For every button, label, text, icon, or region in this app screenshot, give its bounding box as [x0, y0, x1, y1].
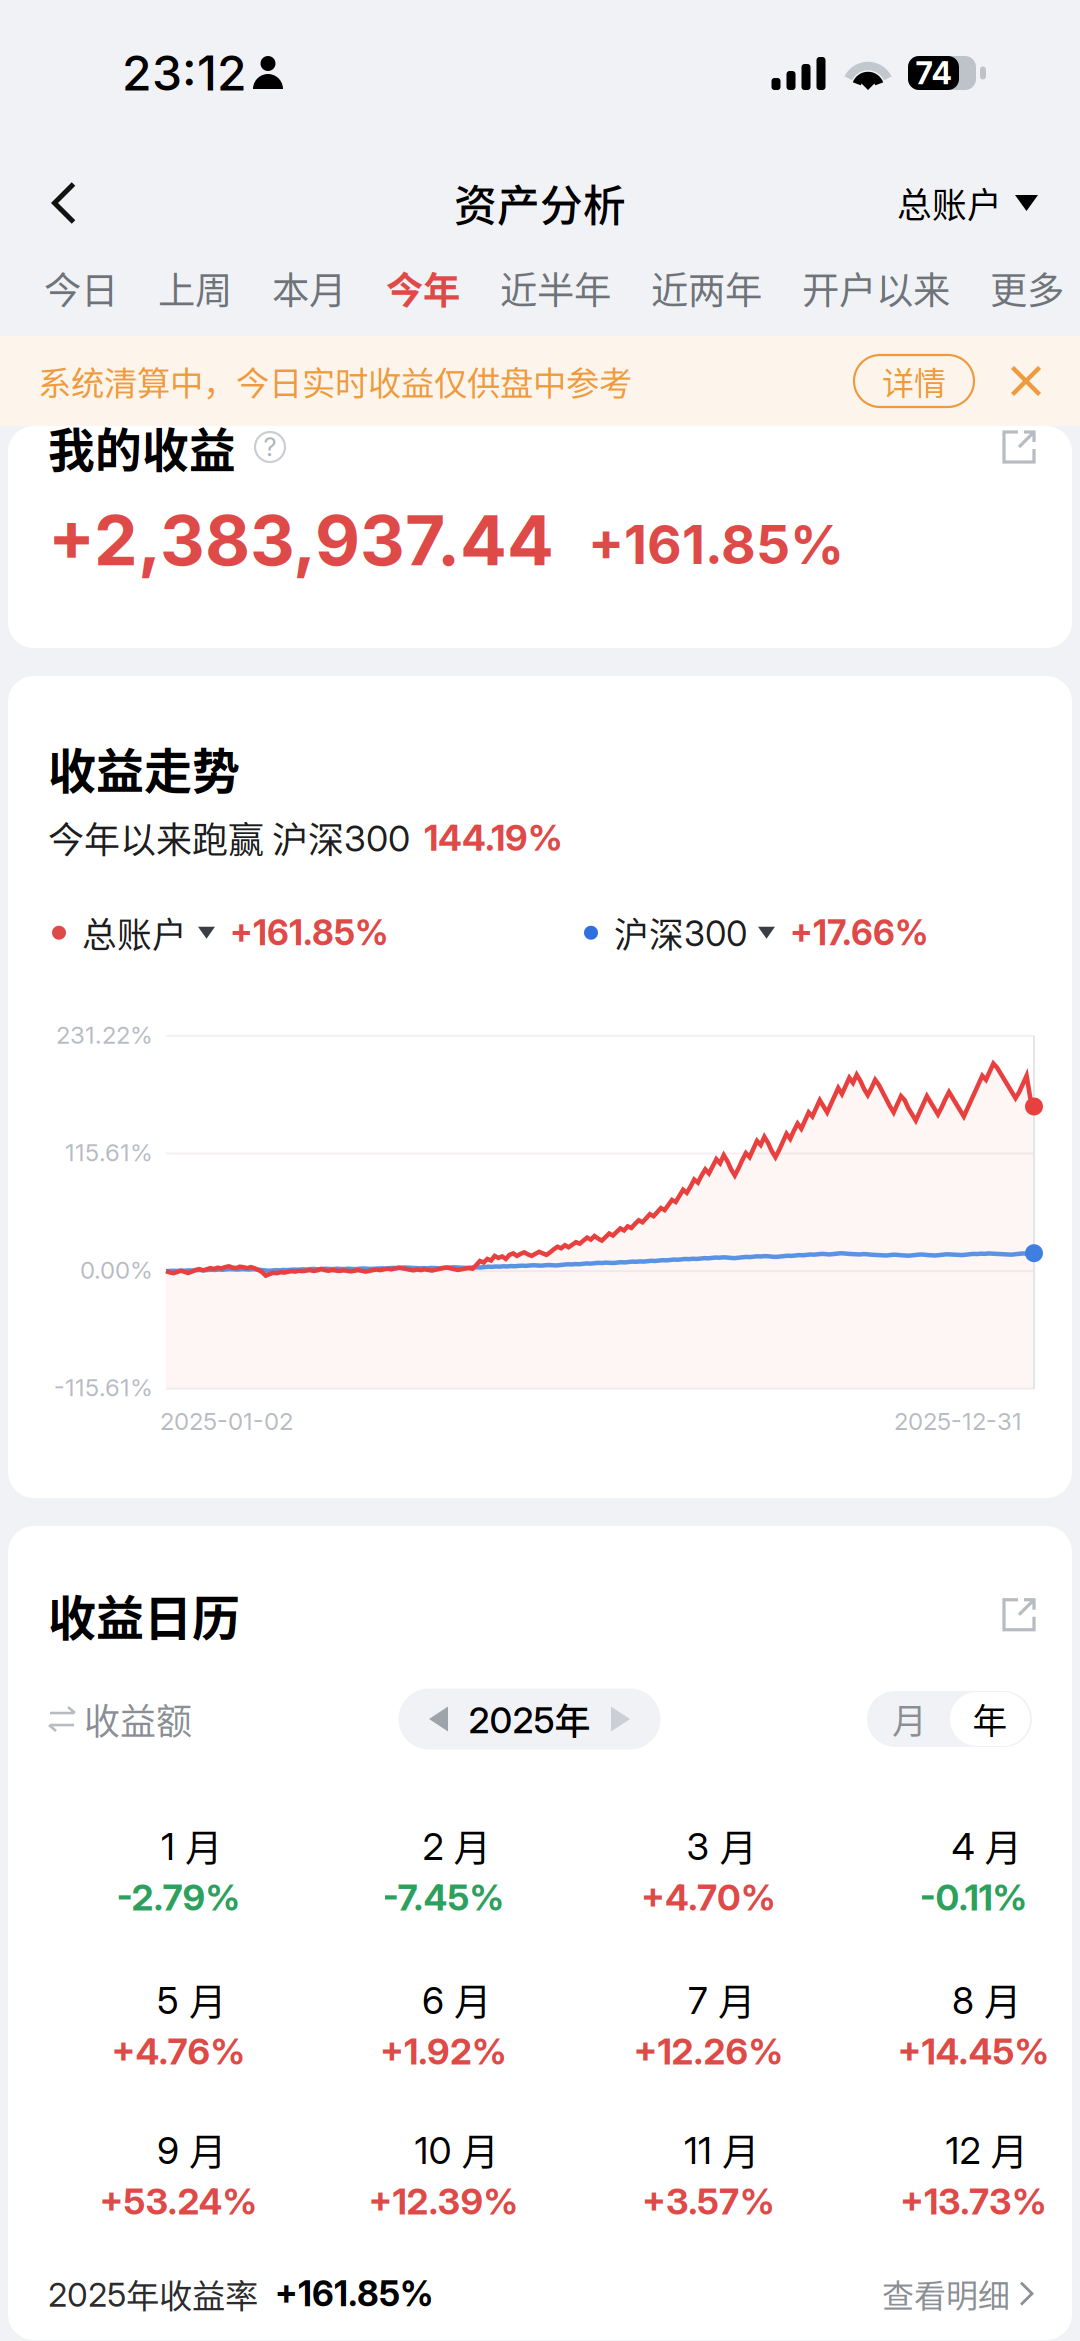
staticText: 收益额	[84, 1693, 192, 1745]
staticText: 7 月	[688, 1972, 755, 2027]
staticText: 6 月	[422, 1972, 491, 2027]
staticText: -0.11%	[919, 1876, 1027, 1919]
staticText: +1.92%	[380, 2030, 507, 2073]
staticText: +13.73%	[900, 2180, 1047, 2223]
button[interactable]: 查看明细	[882, 2270, 1036, 2317]
staticText: +17.66%	[790, 912, 928, 954]
button[interactable]: 总账户	[52, 908, 388, 958]
button[interactable]: 月	[869, 1693, 950, 1745]
staticText: 总账户	[897, 178, 1002, 228]
button[interactable]: 开户以来	[802, 240, 950, 336]
button[interactable]: 今年	[386, 240, 460, 336]
button[interactable]: 9 月	[46, 2127, 311, 2220]
staticText: 231.22%	[56, 1021, 153, 1050]
button[interactable]: 下一年	[590, 1690, 650, 1748]
staticText: 10 月	[414, 2122, 498, 2177]
button[interactable]: 今日	[44, 240, 118, 336]
button[interactable]: 返回	[0, 166, 128, 240]
staticText: 74	[915, 54, 951, 91]
button[interactable]: 7 月	[576, 1977, 841, 2070]
staticText: +3.57%	[642, 2180, 775, 2223]
staticText: ?	[263, 432, 276, 462]
staticText: 115.61%	[65, 1138, 153, 1167]
button[interactable]: 本月	[272, 240, 346, 336]
staticText: 8 月	[952, 1972, 1021, 2027]
staticText: +12.39%	[368, 2180, 518, 2223]
staticText: 上周	[158, 261, 232, 315]
button[interactable]: 收益额	[48, 1693, 192, 1745]
button[interactable]: 3 月	[576, 1823, 841, 1916]
button[interactable]: 总账户	[897, 166, 1080, 240]
button[interactable]: 11 月	[576, 2127, 841, 2220]
staticText: 144.19%	[424, 816, 563, 859]
button[interactable]: 更多	[990, 240, 1064, 336]
button[interactable]: 沪深300	[584, 908, 928, 958]
staticText: 年	[972, 1694, 1007, 1744]
staticText: 0.00%	[80, 1256, 153, 1285]
staticText: 更多	[990, 261, 1064, 315]
button[interactable]: 8 月	[841, 1977, 1080, 2070]
staticText: +4.76%	[111, 2030, 245, 2073]
staticText: 5 月	[157, 1972, 226, 2027]
staticText: 2 月	[422, 1818, 490, 1873]
staticText: 1 月	[161, 1818, 222, 1873]
staticText: 收益走势	[48, 733, 240, 802]
button[interactable]: 1 月	[46, 1823, 311, 1916]
button[interactable]: 4 月	[841, 1823, 1080, 1916]
button[interactable]: 2 月	[311, 1823, 576, 1916]
staticText: -2.79%	[116, 1876, 240, 1919]
staticText: 11 月	[684, 2122, 759, 2177]
staticText: 沪深300	[614, 908, 747, 958]
button[interactable]: 上一年	[408, 1690, 468, 1748]
staticText: +14.45%	[897, 2030, 1049, 2073]
staticText: 3 月	[686, 1818, 756, 1873]
staticText: 查看明细	[882, 2270, 1010, 2317]
button[interactable]: 12 月	[841, 2127, 1080, 2220]
staticText: +12.26%	[633, 2030, 783, 2073]
staticText: 12 月	[945, 2122, 1027, 2177]
staticText: 近半年	[500, 261, 611, 315]
staticText: 本月	[272, 261, 346, 315]
staticText: 2025-01-02	[160, 1407, 293, 1436]
staticText: 2025-12-31	[894, 1407, 1022, 1436]
staticText: 开户以来	[802, 261, 950, 315]
staticText: 今年	[386, 261, 460, 315]
staticText: 总账户	[82, 908, 187, 958]
staticText: 今日	[44, 261, 118, 315]
staticText: 近两年	[651, 261, 762, 315]
button[interactable]: 近两年	[651, 240, 762, 336]
button[interactable]: 上周	[158, 240, 232, 336]
button[interactable]: 展开	[1000, 1596, 1038, 1634]
button[interactable]: 年	[950, 1692, 1030, 1746]
staticText: 收益日历	[48, 1580, 240, 1649]
button[interactable]: 详情	[854, 355, 974, 407]
staticText: 月	[892, 1694, 927, 1744]
staticText: 今年以来跑赢 沪深300	[48, 811, 410, 864]
staticText: 23:12	[122, 44, 247, 102]
staticText: -7.45%	[382, 1876, 504, 1919]
staticText: +161.85%	[230, 912, 388, 954]
staticText: 9 月	[157, 2122, 226, 2177]
staticText: +161.85%	[275, 2273, 433, 2315]
button[interactable]: 5 月	[46, 1977, 311, 2070]
staticText: 我的收益	[48, 413, 236, 481]
button[interactable]: 展开	[1000, 428, 1038, 466]
staticText: 详情	[882, 358, 946, 404]
button[interactable]: 近半年	[500, 240, 611, 336]
staticText: +4.70%	[641, 1876, 776, 1919]
staticText: +53.24%	[99, 2180, 257, 2223]
staticText: -115.61%	[54, 1373, 153, 1402]
staticText: 2025年收益率	[48, 2269, 258, 2318]
staticText: 4 月	[951, 1818, 1021, 1873]
staticText: 2025年	[468, 1693, 590, 1745]
button[interactable]: 关闭	[974, 336, 1078, 426]
staticText: 系统清算中，今日实时收益仅供盘中参考	[38, 357, 632, 405]
staticText: 资产分析	[454, 172, 626, 234]
staticText: +161.85%	[588, 512, 844, 577]
staticText: +2,383,937.44	[48, 498, 554, 582]
button[interactable]: 6 月	[311, 1977, 576, 2070]
button[interactable]: 10 月	[311, 2127, 576, 2220]
